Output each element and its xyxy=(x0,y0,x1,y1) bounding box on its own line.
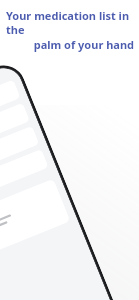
button[interactable] xyxy=(0,149,49,212)
staticText: palm of your hand xyxy=(6,37,134,52)
button[interactable] xyxy=(0,178,71,266)
button[interactable] xyxy=(0,126,39,189)
button[interactable] xyxy=(0,102,30,166)
staticText: Your medication list in the xyxy=(6,8,134,37)
button[interactable] xyxy=(0,79,21,142)
